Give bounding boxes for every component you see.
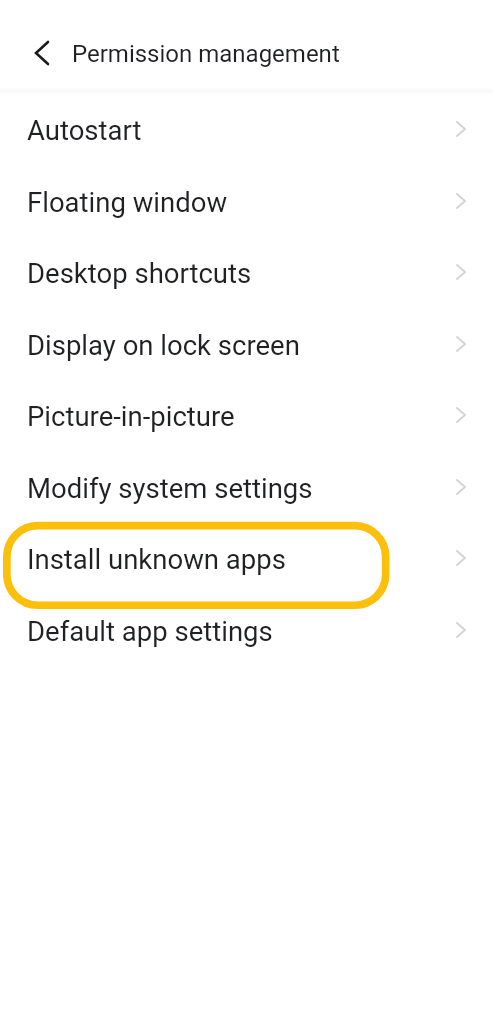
button[interactable]: Back [25, 36, 59, 70]
button[interactable]: Install unknown apps [0, 523, 493, 595]
staticText: Picture-in-picture [27, 400, 235, 432]
staticText: Default app settings [27, 615, 273, 647]
staticText: Permission management [72, 40, 340, 68]
staticText: Display on lock screen [27, 329, 300, 361]
staticText: Autostart [27, 114, 142, 146]
button[interactable]: Default app settings [0, 595, 493, 667]
staticText: Install unknown apps [27, 543, 286, 575]
button[interactable]: Autostart [0, 94, 493, 166]
button[interactable]: Picture-in-picture [0, 380, 493, 452]
button[interactable]: Desktop shortcuts [0, 237, 493, 309]
button[interactable]: Modify system settings [0, 452, 493, 524]
button[interactable]: Display on lock screen [0, 309, 493, 381]
staticText: Desktop shortcuts [27, 257, 252, 289]
button[interactable]: Floating window [0, 166, 493, 238]
staticText: Floating window [27, 186, 228, 218]
staticText: Modify system settings [27, 472, 313, 504]
